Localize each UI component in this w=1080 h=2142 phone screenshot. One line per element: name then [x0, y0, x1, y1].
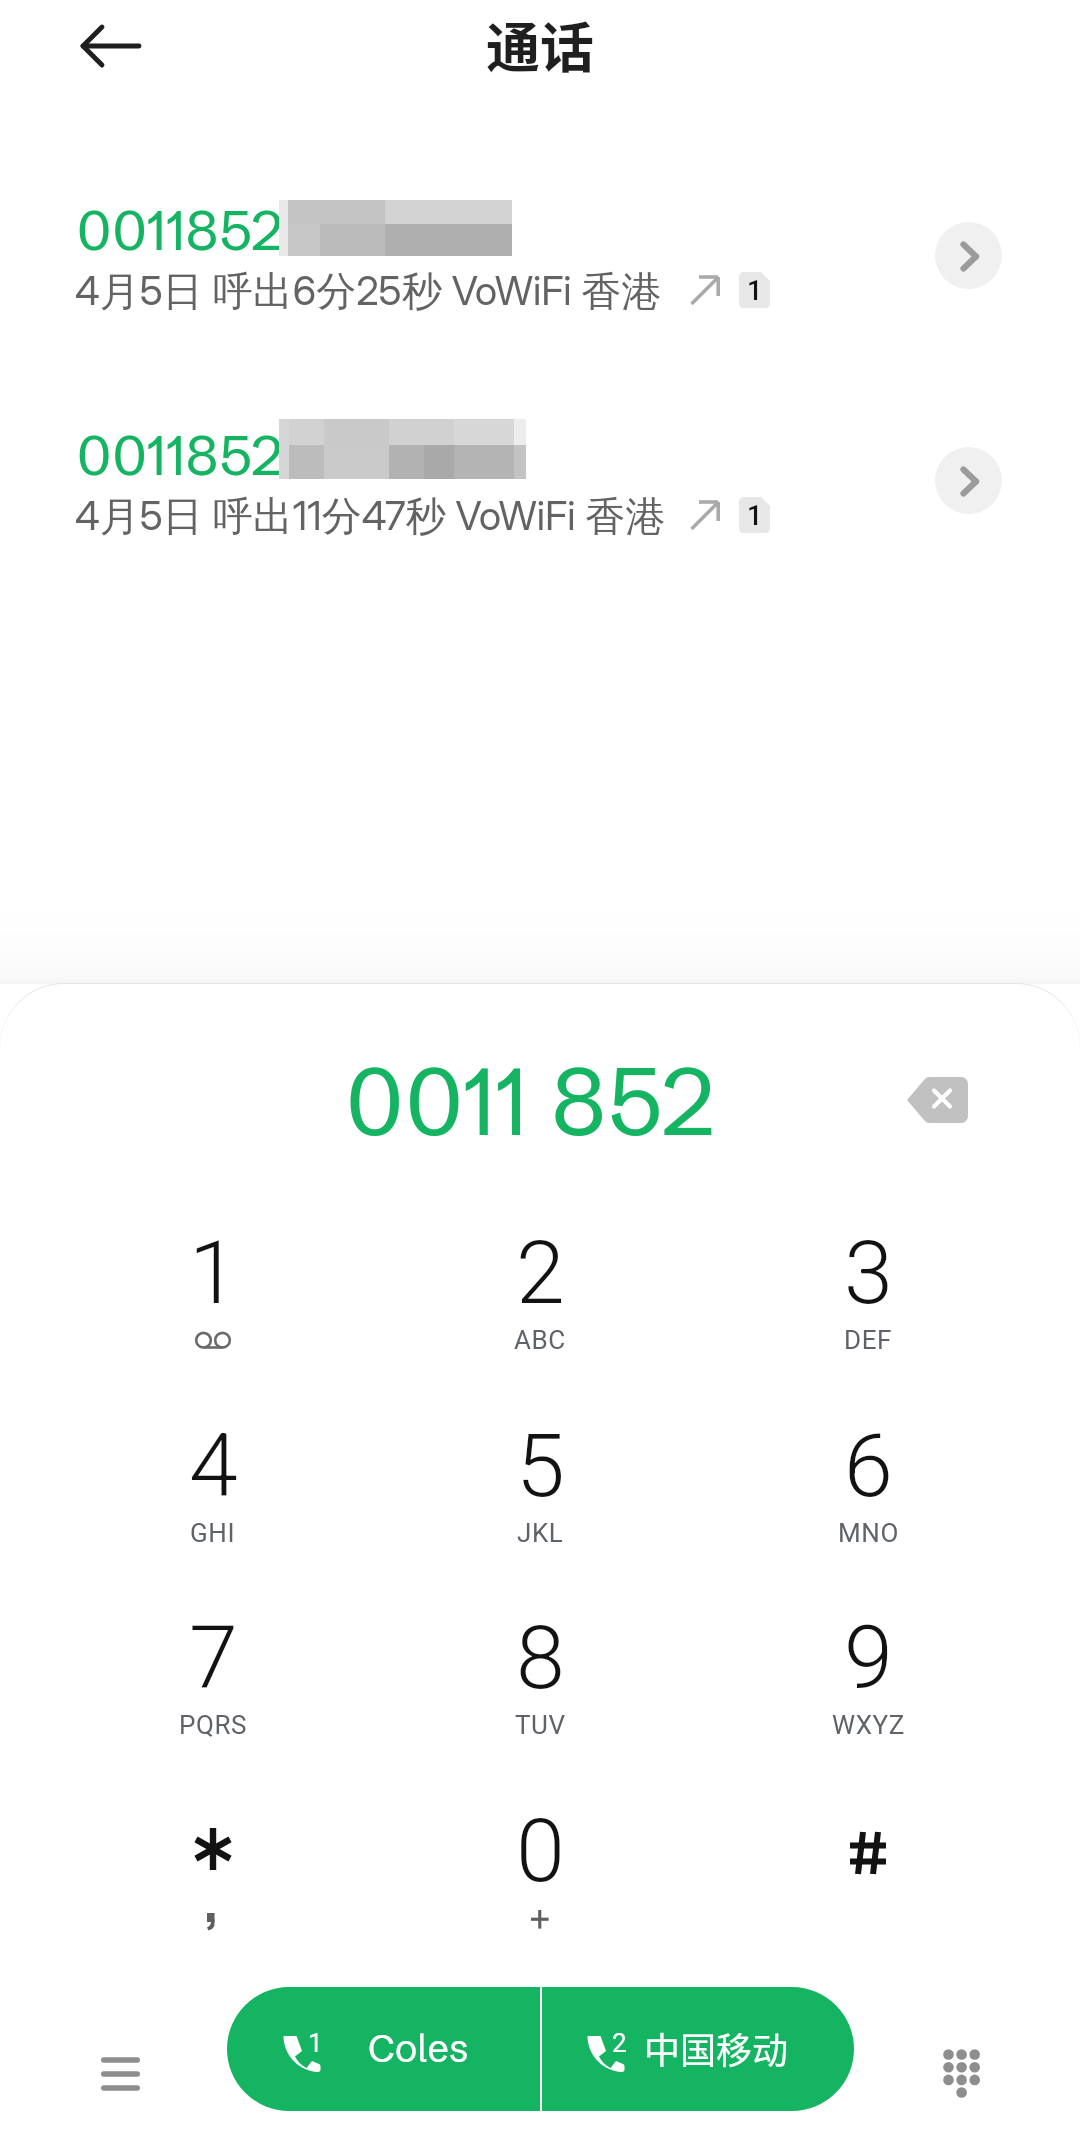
- staticText: 4月5日 呼出11分47秒 VoWiFi 香港: [75, 491, 666, 542]
- button[interactable]: 2: [542, 1987, 854, 2111]
- staticText: 2: [612, 2028, 627, 2058]
- staticText: 8: [516, 1606, 565, 1709]
- button[interactable]: 0011852: [0, 423, 1080, 539]
- staticText: PQRS: [179, 1710, 248, 1740]
- button[interactable]: 0: [430, 1770, 650, 1946]
- staticText: 1: [189, 1221, 238, 1324]
- staticText: 0011852: [77, 195, 284, 264]
- staticText: 0011 852: [346, 1043, 715, 1159]
- staticText: 通话: [486, 5, 594, 83]
- staticText: JKL: [517, 1518, 564, 1548]
- button[interactable]: [103, 1770, 323, 1946]
- button[interactable]: 3: [758, 1192, 978, 1368]
- staticText: 1: [308, 2028, 323, 2058]
- staticText: 4月5日 呼出6分25秒 VoWiFi 香港: [75, 266, 662, 317]
- button[interactable]: 4: [103, 1385, 323, 1561]
- staticText: 6: [844, 1414, 893, 1517]
- staticText: GHI: [190, 1518, 236, 1548]
- button[interactable]: 9: [758, 1577, 978, 1753]
- staticText: 7: [189, 1606, 238, 1709]
- button[interactable]: [758, 1770, 978, 1946]
- staticText: TUV: [515, 1710, 566, 1740]
- staticText: 2: [516, 1221, 565, 1324]
- staticText: 1: [747, 500, 763, 532]
- staticText: 3: [844, 1221, 893, 1324]
- staticText: 4: [189, 1414, 238, 1517]
- staticText: DEF: [844, 1325, 893, 1355]
- button[interactable]: 6: [758, 1385, 978, 1561]
- staticText: WXYZ: [832, 1710, 905, 1740]
- button[interactable]: Call history menu: [75, 2028, 165, 2118]
- button[interactable]: Dialpad: [916, 2028, 1006, 2118]
- button[interactable]: Call details: [935, 447, 1002, 514]
- button[interactable]: 1: [103, 1192, 323, 1368]
- button[interactable]: Call details: [935, 222, 1002, 289]
- staticText: 9: [844, 1606, 893, 1709]
- staticText: 0011852: [77, 420, 284, 489]
- staticText: MNO: [838, 1518, 899, 1548]
- staticText: 5: [516, 1414, 565, 1517]
- button[interactable]: 0011852: [0, 198, 1080, 314]
- staticText: ABC: [514, 1325, 566, 1355]
- button[interactable]: 8: [430, 1577, 650, 1753]
- button[interactable]: Back: [55, 13, 121, 79]
- button[interactable]: 2: [430, 1192, 650, 1368]
- button[interactable]: 7: [103, 1577, 323, 1753]
- button[interactable]: Backspace: [890, 1052, 986, 1148]
- staticText: 0: [516, 1799, 565, 1902]
- button[interactable]: 1: [227, 1987, 540, 2111]
- button[interactable]: 5: [430, 1385, 650, 1561]
- staticText: Coles: [368, 2025, 469, 2072]
- staticText: 中国移动: [644, 2022, 789, 2074]
- staticText: 1: [747, 275, 763, 307]
